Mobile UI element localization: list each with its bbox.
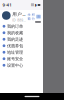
staticText: 余额 [28,13,31,21]
staticText: 优惠券包 [7,43,23,48]
staticText: 券 [37,15,40,19]
staticText: 设置中心 [7,63,23,68]
staticText: 我的足迹 [7,37,23,42]
button[interactable]: 设置中心 [0,62,43,68]
staticText: 用户昵称 [12,11,26,17]
button[interactable]: 地址管理 [0,49,43,55]
staticText: 9:41 [2,3,11,7]
staticText: 我的收藏 [7,30,23,35]
staticText: ıll [31,3,34,7]
staticText: 地址管理 [7,50,23,55]
button[interactable]: 账号安全 [0,55,43,62]
button[interactable]: 我的订单 [0,23,43,29]
staticText: ◗ [35,3,37,7]
button[interactable]: 优惠券包 [0,42,43,49]
button[interactable]: 我的收藏 [0,29,43,36]
staticText: ID: 88991234 [12,18,26,22]
staticText: 账号安全 [7,56,23,61]
staticText: 我的订单 [7,24,23,29]
button[interactable]: 我的足迹 [0,36,43,42]
staticText: 积分 [32,13,35,21]
